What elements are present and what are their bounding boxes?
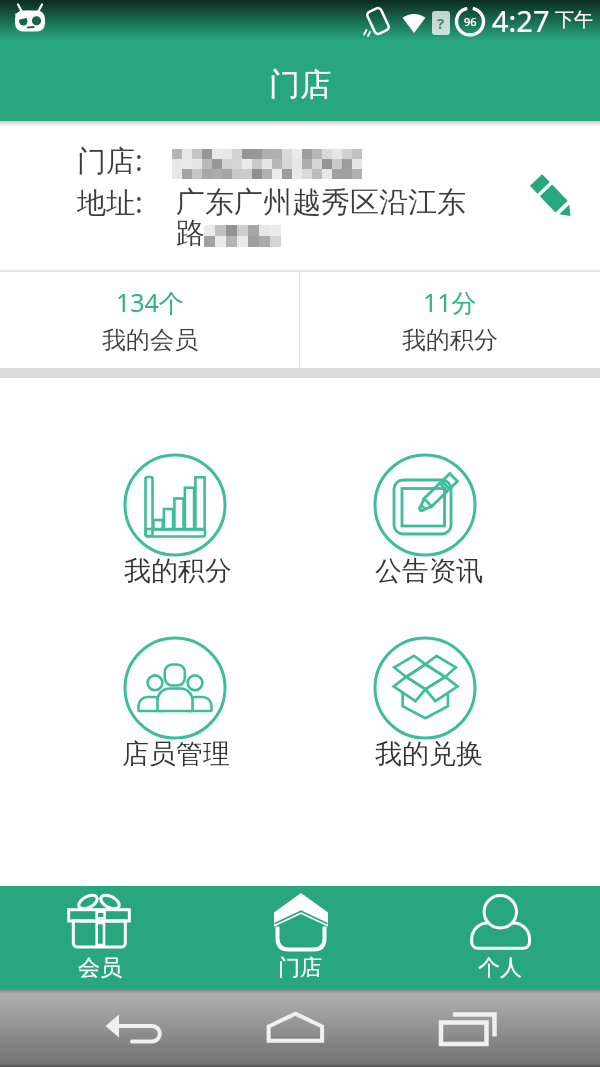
- staticText: 会员: [78, 954, 122, 982]
- staticText: 门店: [269, 65, 331, 104]
- staticText: 下午: [555, 8, 593, 32]
- staticText: 门店:: [77, 140, 143, 180]
- button[interactable]: [115, 445, 235, 595]
- staticText: 地址:: [77, 182, 143, 222]
- staticText: 我的积分: [402, 325, 498, 355]
- staticText: 96: [464, 14, 477, 29]
- staticText: 路: [176, 215, 205, 252]
- button[interactable]: [115, 628, 235, 778]
- button[interactable]: [524, 167, 580, 223]
- button[interactable]: [430, 995, 505, 1050]
- staticText: 公告资讯: [375, 554, 483, 588]
- button[interactable]: 会员: [0, 886, 200, 990]
- staticText: 11分: [423, 285, 477, 319]
- staticText: ?: [437, 13, 445, 33]
- button[interactable]: 134个: [0, 272, 299, 368]
- staticText: 店员管理: [122, 737, 230, 771]
- staticText: 4:27: [492, 1, 550, 40]
- staticText: 我的积分: [124, 554, 232, 588]
- button[interactable]: 11分: [300, 272, 600, 368]
- staticText: 134个: [116, 285, 184, 319]
- button[interactable]: 个人: [400, 886, 600, 990]
- staticText: 我的兑换: [375, 737, 483, 771]
- staticText: 门店: [278, 954, 322, 982]
- button[interactable]: 门店: [200, 886, 400, 990]
- staticText: 广东广州越秀区沿江东: [176, 184, 466, 221]
- button[interactable]: [95, 995, 170, 1050]
- button[interactable]: [365, 628, 485, 778]
- button[interactable]: [258, 995, 333, 1050]
- staticText: 个人: [478, 954, 522, 982]
- button[interactable]: [365, 445, 485, 595]
- button[interactable]: 门店:: [0, 121, 600, 270]
- staticText: 我的会员: [102, 325, 198, 355]
